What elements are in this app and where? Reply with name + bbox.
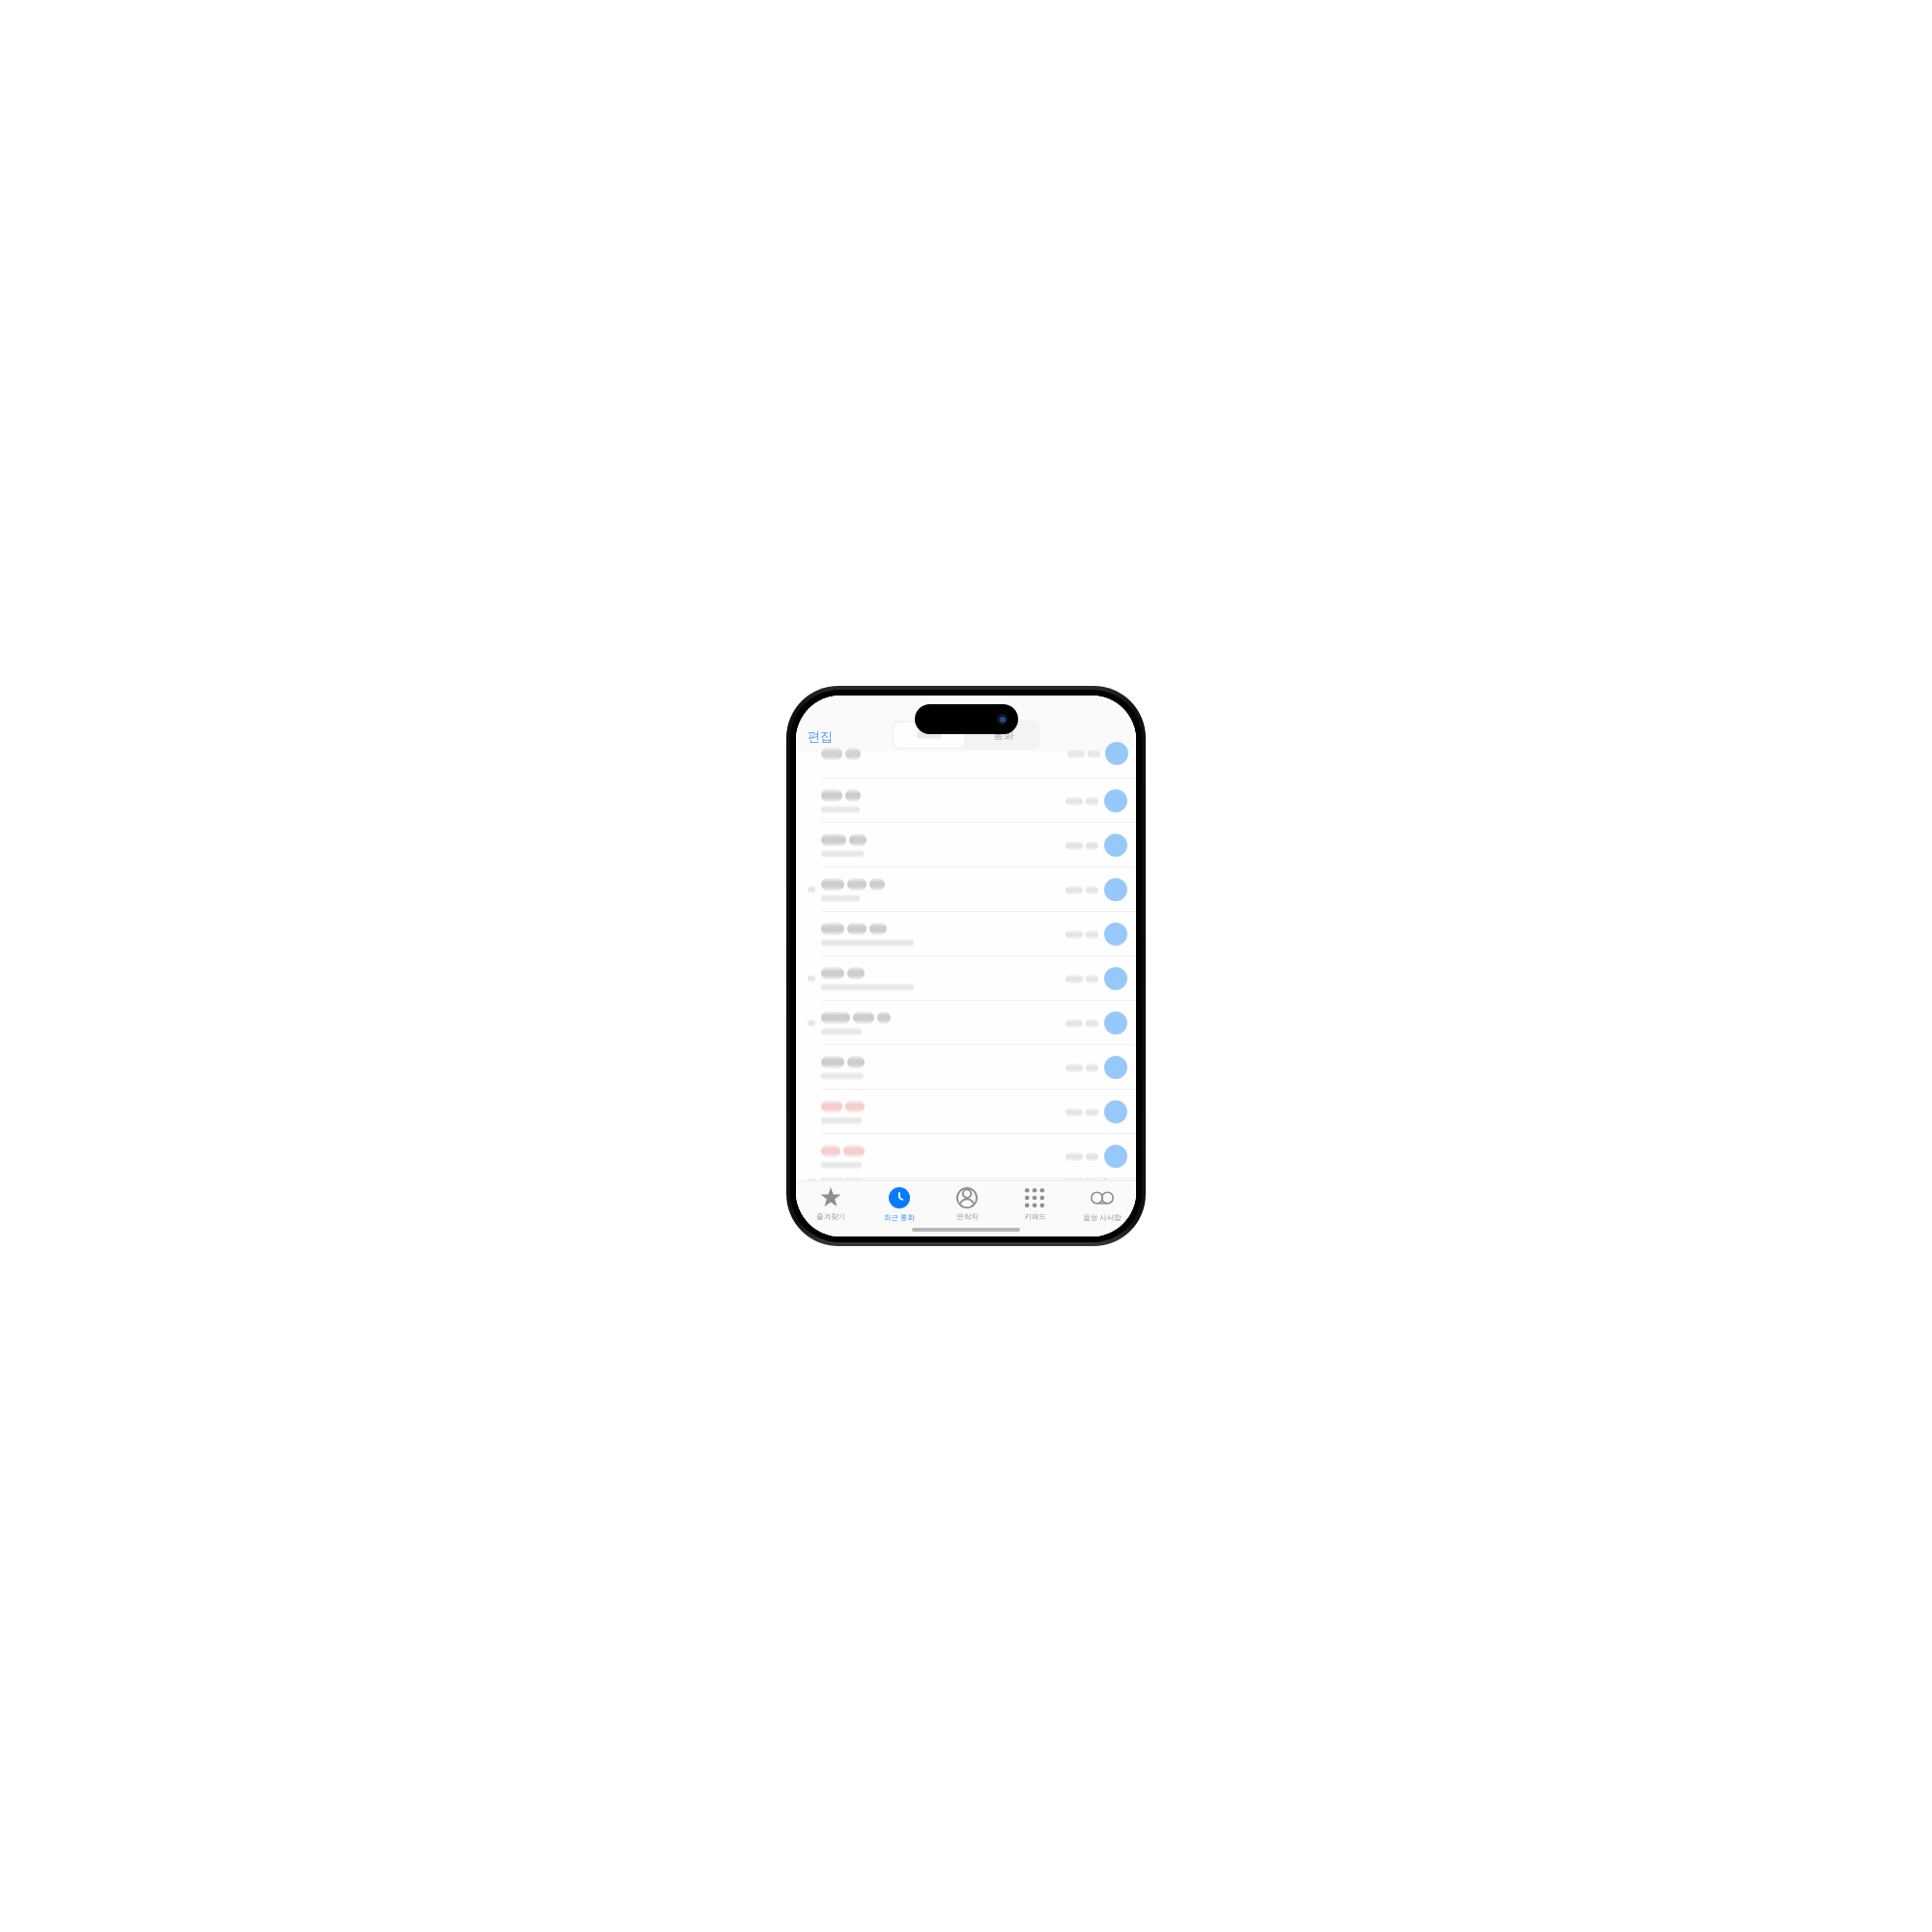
- button[interactable]: 연락처: [933, 1180, 1001, 1236]
- button[interactable]: 자세한 정보: [796, 1134, 1136, 1179]
- button[interactable]: 자세한 정보: [1103, 1010, 1128, 1036]
- button[interactable]: 편집: [806, 726, 835, 746]
- button[interactable]: 자세한 정보: [796, 1001, 1136, 1045]
- button[interactable]: 자세한 정보: [1103, 922, 1128, 947]
- staticText: 연락처: [956, 1212, 979, 1221]
- button[interactable]: 자세한 정보: [1103, 1055, 1128, 1080]
- staticText: 최근 통화: [884, 1212, 915, 1222]
- button[interactable]: 통화: [966, 721, 1040, 750]
- staticText: 즐겨찾기: [816, 1212, 845, 1221]
- button[interactable]: 키패드: [1001, 1180, 1068, 1236]
- button[interactable]: 자세한 정보: [796, 1090, 1136, 1134]
- button[interactable]: 자세한 정보: [1103, 1179, 1128, 1180]
- button[interactable]: 자세한 정보: [1103, 788, 1128, 813]
- button[interactable]: 자세한 정보: [1103, 1144, 1128, 1169]
- button[interactable]: [894, 723, 964, 748]
- staticText: 음성 사서함: [1083, 1212, 1122, 1222]
- staticText: 키패드: [1024, 1212, 1046, 1221]
- staticText: 통화: [993, 728, 1014, 742]
- button[interactable]: 자세한 정보: [796, 779, 1136, 823]
- button[interactable]: 자세한 정보: [1103, 966, 1128, 991]
- button[interactable]: 최근 통화: [865, 1180, 933, 1236]
- button[interactable]: [796, 752, 1136, 779]
- button[interactable]: 자세한 정보: [1103, 1099, 1128, 1124]
- button[interactable]: 자세한 정보: [796, 1045, 1136, 1090]
- button[interactable]: 즐겨찾기: [796, 1180, 865, 1236]
- button[interactable]: 음성 사서함: [1068, 1180, 1136, 1236]
- button[interactable]: 자세한 정보: [796, 1179, 1136, 1180]
- button[interactable]: 자세한 정보: [1103, 833, 1128, 858]
- button[interactable]: 자세한 정보: [796, 867, 1136, 912]
- button[interactable]: 자세한 정보: [796, 912, 1136, 956]
- button[interactable]: 자세한 정보: [1103, 877, 1128, 902]
- button[interactable]: 자세한 정보: [796, 823, 1136, 867]
- button[interactable]: 자세한 정보: [796, 956, 1136, 1001]
- staticText: 편집: [808, 728, 833, 744]
